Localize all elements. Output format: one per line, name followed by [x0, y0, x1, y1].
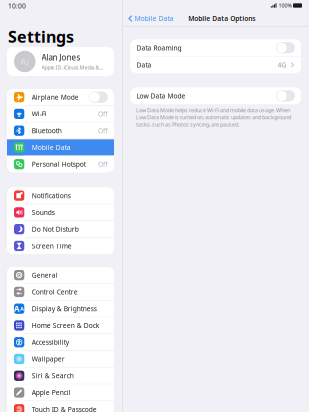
staticText: Touch ID & Passcode [32, 405, 97, 412]
button[interactable]: Bluetooth [7, 122, 114, 139]
staticText: Home Screen & Dock [32, 321, 100, 330]
staticText: Apple Pencil [32, 388, 71, 397]
staticText: 4G [277, 60, 286, 69]
staticText: Siri & Search [32, 371, 74, 380]
button[interactable]: Notifications [7, 187, 114, 204]
staticText: Off [98, 160, 108, 169]
button[interactable]: Data [130, 57, 301, 73]
staticText: Airplane Mode [32, 93, 79, 102]
staticText: Mobile Data [135, 14, 174, 23]
staticText: Personal Hotspot [32, 160, 86, 169]
staticText: Mobile Data [32, 143, 71, 152]
staticText: Low Data Mode [136, 91, 185, 100]
staticText: Notifications [32, 191, 71, 200]
button[interactable]: Wi-Fi [7, 106, 114, 122]
button[interactable]: Siri & Search [7, 368, 114, 384]
staticText: Alan Jones [41, 52, 80, 63]
staticText: Mobile Data Options [188, 14, 255, 23]
staticText: Bluetooth [32, 126, 62, 135]
staticText: Screen Time [32, 241, 72, 250]
button[interactable]: Mobile Data [7, 139, 114, 155]
staticText: Control Centre [32, 287, 78, 296]
button[interactable]: Wallpaper [7, 351, 114, 367]
staticText: Sounds [32, 208, 55, 217]
staticText: AJ [21, 56, 29, 67]
button[interactable]: Personal Hotspot [7, 156, 114, 172]
button[interactable]: Sounds [7, 204, 114, 220]
button[interactable]: Apple Pencil [7, 384, 114, 401]
staticText: 100% [278, 2, 291, 9]
button[interactable]: Accessibility [7, 334, 114, 350]
button[interactable]: Airplane Mode [7, 89, 114, 105]
button[interactable]: Low Data Mode [130, 88, 301, 104]
button[interactable]: Home Screen & Dock [7, 317, 114, 333]
staticText: A [20, 305, 24, 312]
button[interactable]: General [7, 267, 114, 283]
staticText: Data [136, 60, 151, 69]
staticText: Apple ID, iCloud, Media &... [41, 64, 102, 71]
staticText: Off [98, 109, 108, 118]
button[interactable]: AJ [7, 47, 114, 76]
button[interactable]: Data Roaming [130, 39, 301, 56]
staticText: Data Roaming [136, 43, 181, 52]
staticText: Accessibility [32, 338, 69, 347]
staticText: Wi-Fi [32, 109, 47, 118]
button[interactable]: Control Centre [7, 284, 114, 300]
button[interactable]: A [7, 301, 114, 317]
staticText: Off [98, 126, 108, 135]
staticText: Display & Brightness [32, 304, 97, 313]
staticText: Settings [8, 26, 74, 47]
button[interactable]: Touch ID & Passcode [7, 401, 114, 412]
button[interactable]: Do Not Disturb [7, 221, 114, 237]
button[interactable]: Screen Time [7, 238, 114, 254]
staticText: Do Not Disturb [32, 225, 79, 234]
staticText: A [14, 303, 20, 314]
staticText: General [32, 271, 58, 280]
staticText: Low Data Mode helps reduce Wi-Fi and mob… [136, 107, 291, 128]
button[interactable]: Mobile Data [125, 11, 177, 25]
staticText: Wallpaper [32, 355, 65, 363]
staticText: 10:00 [8, 2, 26, 10]
